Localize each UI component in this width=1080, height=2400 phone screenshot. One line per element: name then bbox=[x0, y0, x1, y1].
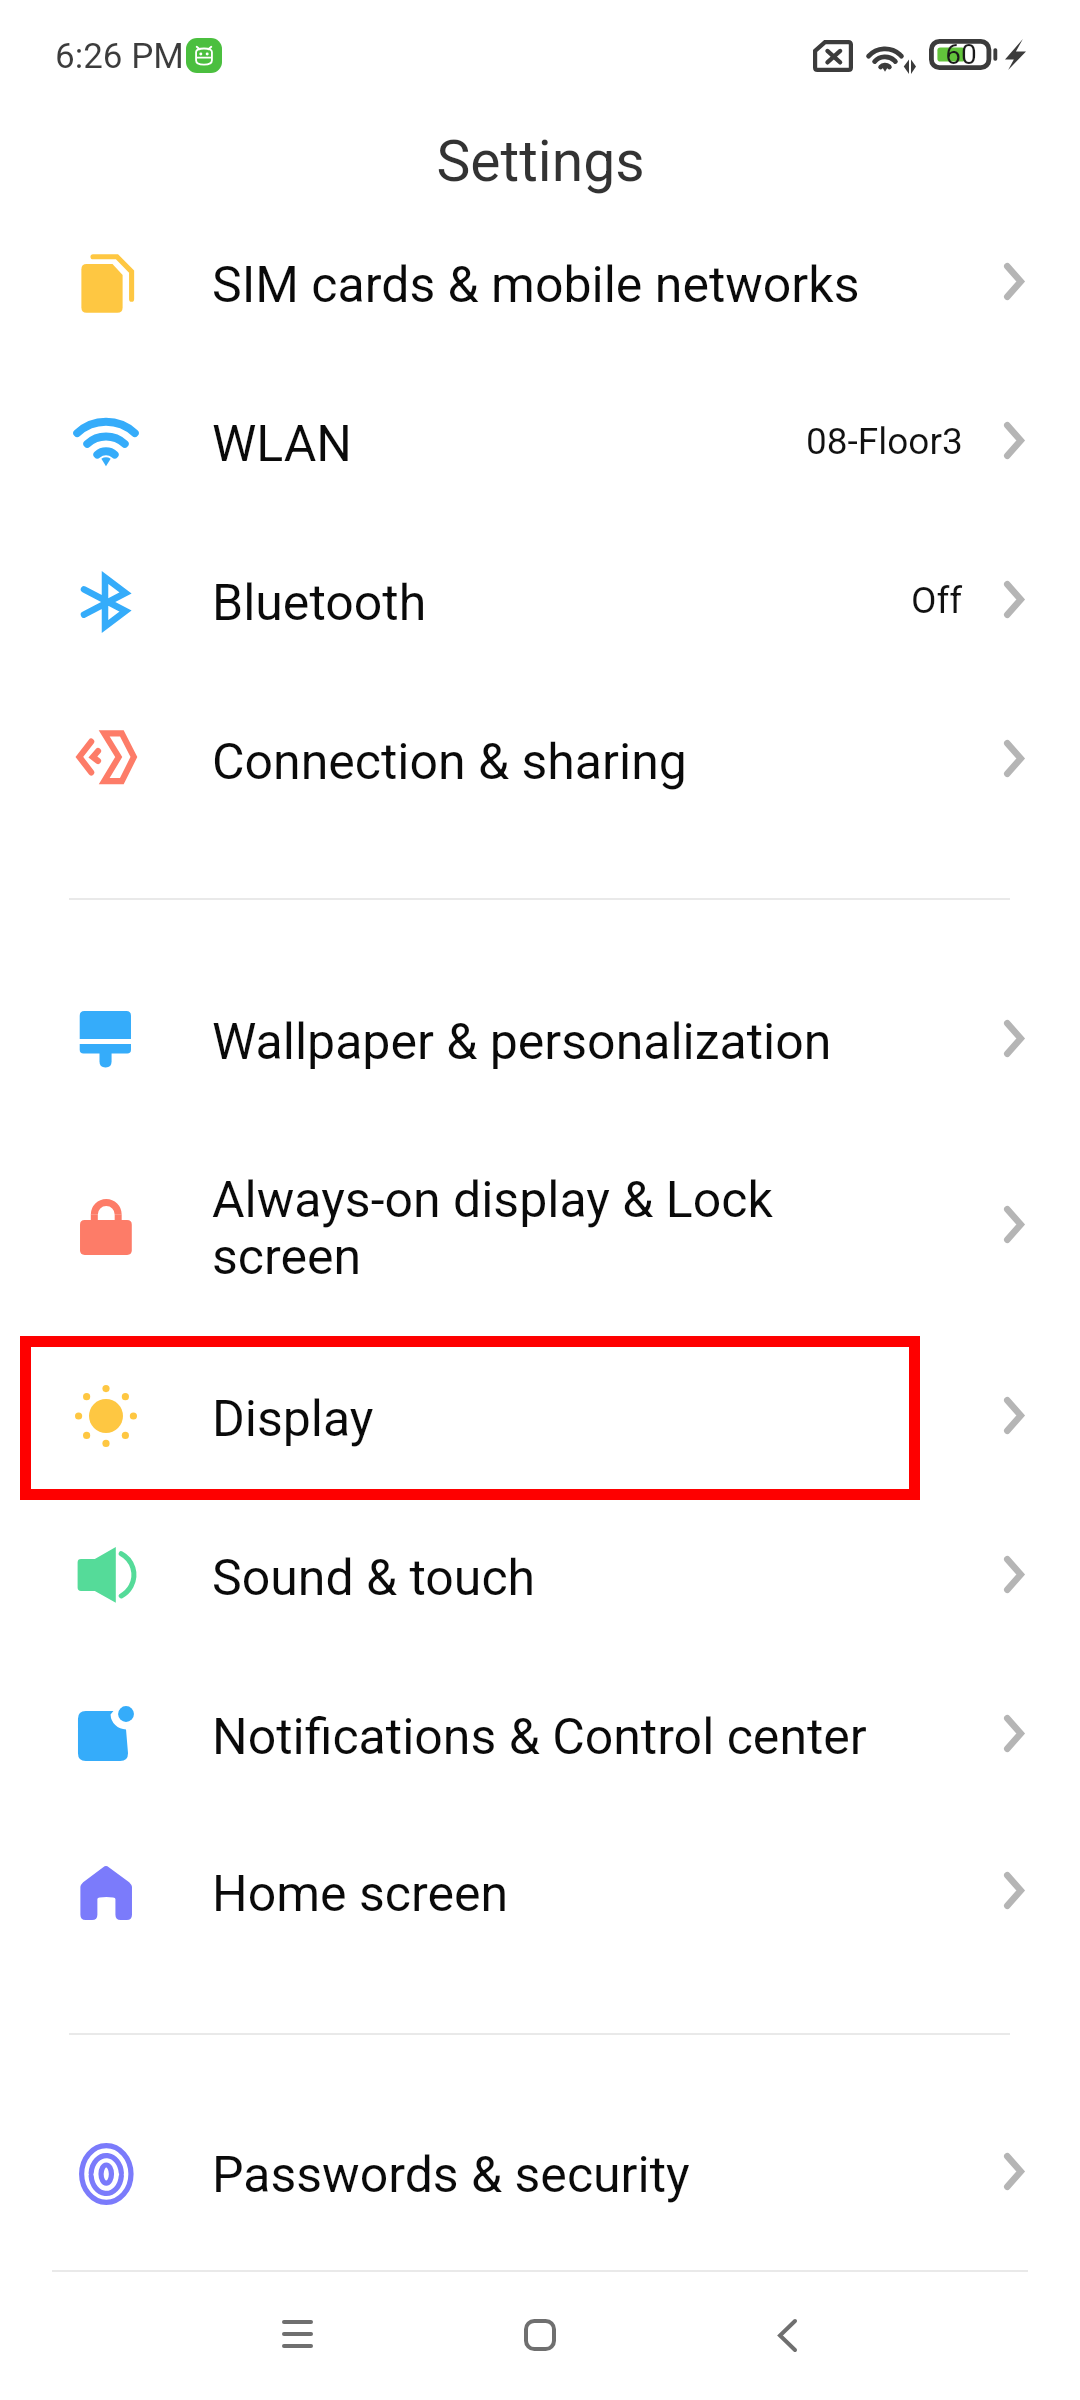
button[interactable]: Bluetooth bbox=[0, 522, 1080, 681]
button[interactable]: Notifications & Control center bbox=[0, 1656, 1080, 1815]
button[interactable]: SIM cards & mobile networks bbox=[0, 204, 1080, 363]
staticText: SIM cards & mobile networks bbox=[212, 256, 1004, 315]
staticText: Wallpaper & personalization bbox=[212, 1013, 1004, 1072]
button[interactable]: Back bbox=[705, 2272, 869, 2400]
button[interactable]: Recent apps bbox=[215, 2272, 379, 2400]
button[interactable]: Display bbox=[0, 1338, 1080, 1497]
staticText: Sound & touch bbox=[212, 1549, 1004, 1608]
staticText: 60 bbox=[945, 38, 977, 69]
staticText: Home screen bbox=[212, 1865, 1004, 1924]
staticText: Passwords & security bbox=[212, 2146, 1004, 2205]
staticText: Off bbox=[911, 579, 963, 622]
staticText: 08-Floor3 bbox=[806, 420, 963, 463]
staticText: Settings bbox=[436, 128, 645, 195]
staticText: Display bbox=[212, 1390, 1004, 1449]
button[interactable]: Passwords & security bbox=[0, 2094, 1080, 2253]
button[interactable]: Home screen bbox=[0, 1813, 1080, 1972]
staticText: Always-on display & Lock screen bbox=[212, 1171, 1004, 1286]
staticText: WLAN bbox=[212, 415, 806, 474]
button[interactable]: Wallpaper & personalization bbox=[0, 961, 1080, 1120]
staticText: Connection & sharing bbox=[212, 733, 1004, 792]
button[interactable]: WLAN bbox=[0, 363, 1080, 522]
button[interactable]: Always-on display & Lock screen bbox=[0, 1147, 1080, 1306]
staticText: Bluetooth bbox=[212, 574, 911, 633]
button[interactable]: Connection & sharing bbox=[0, 681, 1080, 840]
staticText: Notifications & Control center bbox=[212, 1708, 1004, 1767]
button[interactable]: Home bbox=[458, 2272, 622, 2400]
staticText: 6:26 PM bbox=[55, 36, 184, 77]
button[interactable]: Sound & touch bbox=[0, 1497, 1080, 1656]
